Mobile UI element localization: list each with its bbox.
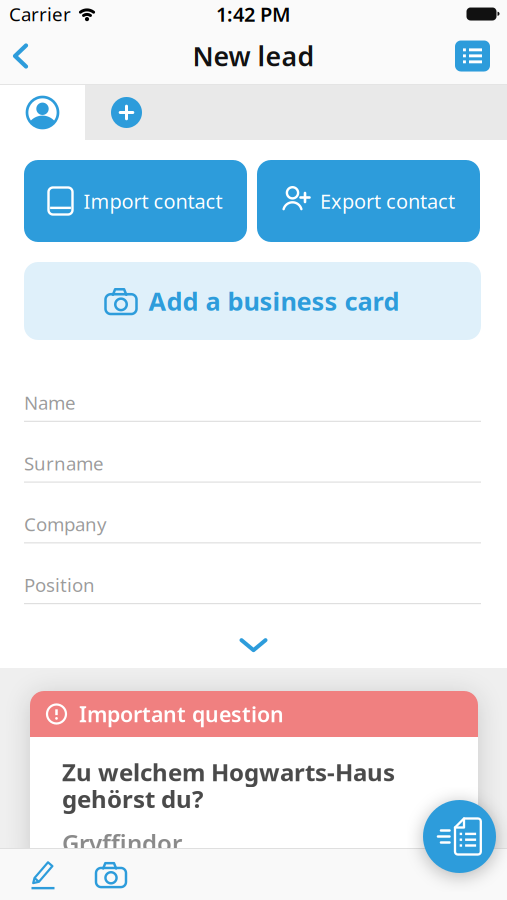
staticText: Zu welchem Hogwarts-Haus	[62, 756, 395, 788]
staticText: 1:42 PM	[216, 1, 291, 27]
staticText: Import contact	[83, 188, 222, 214]
staticText: gehörst du?	[62, 783, 203, 815]
button[interactable]: Import contact	[24, 160, 247, 242]
button[interactable]: Add a business card	[24, 262, 481, 340]
staticText: New lead	[192, 38, 314, 74]
button[interactable]: Generate report	[423, 800, 496, 873]
staticText: Position	[24, 572, 95, 597]
staticText: Company	[24, 512, 107, 536]
staticText: Carrier	[9, 2, 71, 26]
button[interactable]: Leads list	[455, 40, 507, 71]
staticText: Important question	[79, 700, 284, 728]
button[interactable]: Add tab	[85, 97, 142, 128]
staticText: Surname	[24, 451, 104, 476]
staticText: Name	[24, 390, 76, 415]
button[interactable]: Edit	[0, 859, 56, 889]
button[interactable]: Contact tab	[0, 85, 85, 140]
button[interactable]: Camera	[96, 862, 126, 887]
staticText: Gryffindor	[62, 827, 182, 859]
staticText: Add a business card	[148, 284, 399, 318]
button[interactable]: Back	[0, 29, 29, 82]
button[interactable]: Export contact	[257, 160, 480, 242]
staticText: Export contact	[320, 188, 455, 214]
